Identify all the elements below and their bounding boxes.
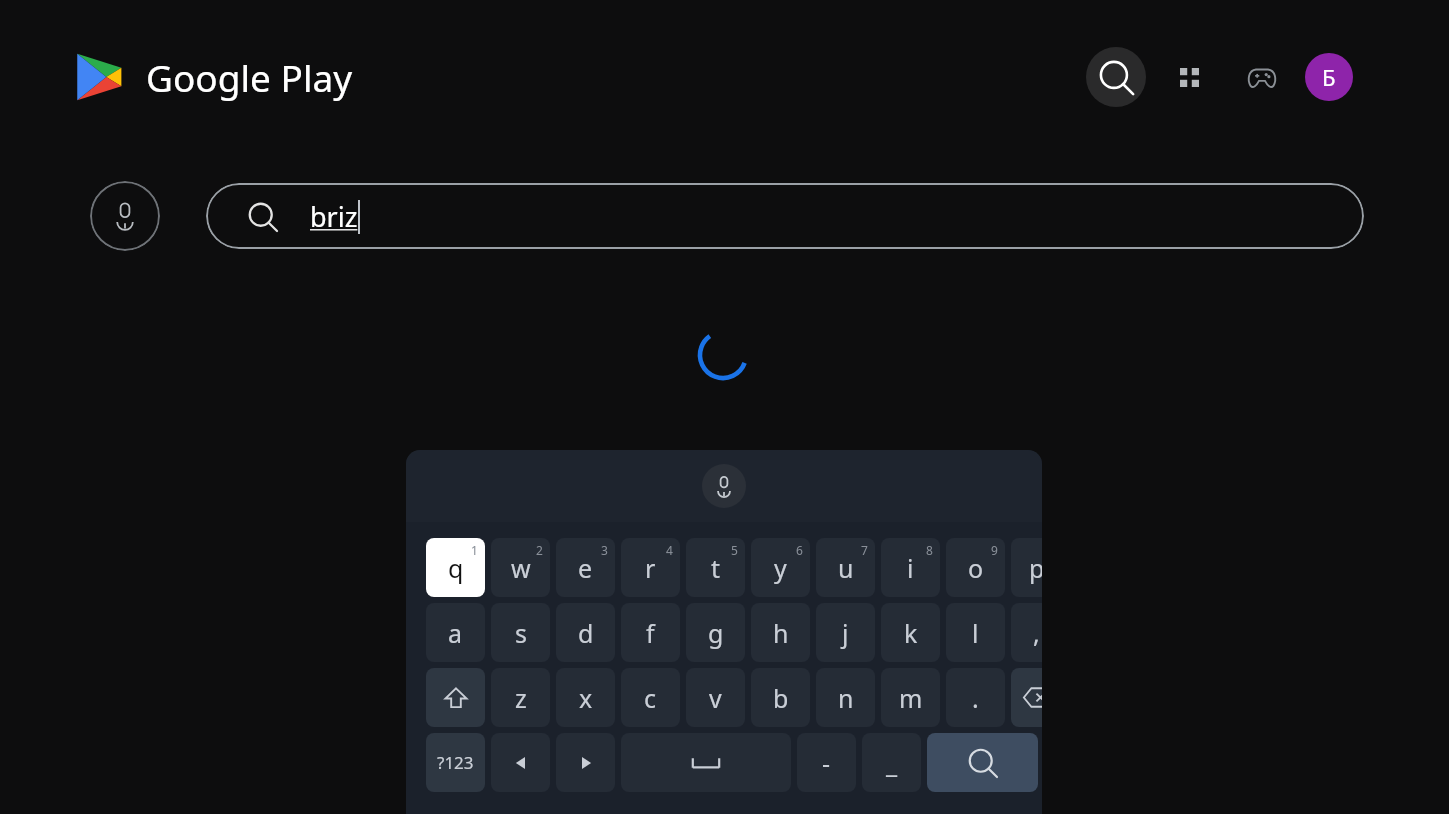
button[interactable]: briz [206,183,1364,249]
button[interactable]: c [621,668,680,727]
staticText: f [646,616,655,650]
button[interactable]: g [686,603,745,662]
button[interactable]: m [881,668,940,727]
button[interactable]: Account [1305,53,1353,101]
staticText: 4 [666,542,673,558]
staticText: l [972,616,979,650]
button[interactable]: a [426,603,485,662]
button[interactable]: t [686,538,745,597]
button[interactable]: f [621,603,680,662]
button[interactable]: z [491,668,550,727]
staticText: a [448,616,463,650]
button[interactable]: Space [621,733,791,792]
staticText: z [515,681,527,715]
staticText: , [1033,616,1040,650]
staticText: 9 [991,542,998,558]
staticText: i [907,551,914,585]
button[interactable]: w [491,538,550,597]
button[interactable]: q [426,538,485,597]
button[interactable]: n [816,668,875,727]
staticText: r [645,551,656,585]
staticText: s [515,616,527,650]
staticText: m [899,681,923,715]
staticText: n [838,681,854,715]
button[interactable]: e [556,538,615,597]
staticText: b [773,681,789,715]
staticText: 8 [926,542,933,558]
staticText: - [822,746,831,780]
button[interactable]: d [556,603,615,662]
staticText: 1 [471,542,478,558]
button[interactable]: b [751,668,810,727]
staticText: y [774,551,787,585]
staticText: x [579,681,593,715]
staticText: e [578,551,593,585]
button[interactable]: i [881,538,940,597]
staticText: 3 [601,542,608,558]
button[interactable]: Move cursor right [556,733,615,792]
staticText: q [448,551,464,585]
staticText: t [711,551,721,585]
staticText: 2 [536,542,543,558]
staticText: v [709,681,722,715]
staticText: 7 [861,542,868,558]
button[interactable]: j [816,603,875,662]
staticText: j [842,616,849,650]
staticText: briz [310,198,358,235]
button[interactable]: u [816,538,875,597]
staticText: c [644,681,657,715]
button[interactable]: Apps [1159,47,1219,107]
button[interactable]: s [491,603,550,662]
button[interactable]: l [946,603,1005,662]
button[interactable]: Search [1086,47,1146,107]
button[interactable]: Move cursor left [491,733,550,792]
button[interactable]: Games [1232,47,1292,107]
button[interactable]: Voice input [702,464,746,508]
button[interactable]: ?123 [426,733,485,792]
button[interactable]: k [881,603,940,662]
button[interactable]: r [621,538,680,597]
button[interactable]: x [556,668,615,727]
staticText: w [511,551,531,585]
staticText: . [972,681,979,715]
button[interactable]: Search [927,733,1038,792]
staticText: g [708,616,724,650]
staticText: 5 [731,542,738,558]
staticText: k [904,616,918,650]
button[interactable]: Backspace [1011,668,1042,727]
button[interactable]: h [751,603,810,662]
staticText: 6 [796,542,803,558]
button[interactable]: Shift [426,668,485,727]
button[interactable]: v [686,668,745,727]
staticText: Б [1322,62,1336,92]
staticText: u [838,551,854,585]
staticText: ?123 [437,751,474,774]
button[interactable]: Google Play [68,48,353,106]
button[interactable]: y [751,538,810,597]
staticText: _ [886,746,898,780]
button[interactable]: o [946,538,1005,597]
button[interactable]: p [1011,538,1042,597]
staticText: Google Play [146,52,353,102]
button[interactable]: - [797,733,856,792]
button[interactable]: . [946,668,1005,727]
staticText: p [1029,551,1042,585]
button[interactable]: Voice search [90,181,160,251]
button[interactable]: _ [862,733,921,792]
button[interactable]: , [1011,603,1042,662]
staticText: o [968,551,984,585]
staticText: d [578,616,594,650]
staticText: h [773,616,789,650]
